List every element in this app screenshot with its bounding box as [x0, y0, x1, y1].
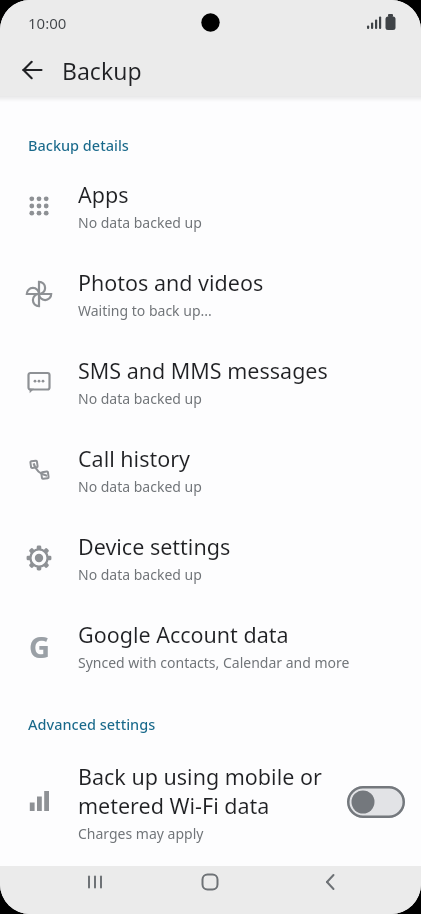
staticText: 10:00	[28, 13, 67, 33]
staticText: G	[29, 627, 50, 666]
staticText: No data backed up	[78, 565, 202, 584]
button[interactable]: G	[0, 602, 421, 690]
staticText: Backup	[62, 55, 142, 86]
button[interactable]: SMS and MMS messages	[0, 338, 421, 426]
staticText: Back up using mobile or metered Wi-Fi da…	[78, 762, 322, 820]
staticText: Charges may apply	[78, 824, 204, 843]
button[interactable]	[63, 866, 127, 898]
button[interactable]: Photos and videos	[0, 250, 421, 338]
button[interactable]	[299, 866, 363, 898]
button[interactable]: Apps	[0, 162, 421, 250]
staticText: No data backed up	[78, 477, 202, 496]
staticText: Call history	[78, 444, 191, 473]
staticText: Apps	[78, 180, 129, 209]
staticText: Advanced settings	[28, 714, 156, 734]
button[interactable]	[7, 44, 59, 96]
staticText: Backup details	[28, 135, 129, 155]
button[interactable]: Device settings	[0, 514, 421, 602]
button[interactable]	[178, 866, 242, 898]
staticText: Device settings	[78, 532, 231, 561]
button[interactable]: Back up using mobile or metered Wi-Fi da…	[0, 758, 421, 846]
staticText: No data backed up	[78, 389, 202, 408]
staticText: Google Account data	[78, 620, 289, 649]
button[interactable]: Call history	[0, 426, 421, 514]
staticText: Waiting to back up...	[78, 301, 212, 320]
staticText: SMS and MMS messages	[78, 356, 328, 385]
button[interactable]	[347, 786, 405, 818]
staticText: No data backed up	[78, 213, 202, 232]
staticText: Synced with contacts, Calendar and more	[78, 653, 350, 672]
staticText: Photos and videos	[78, 268, 264, 297]
